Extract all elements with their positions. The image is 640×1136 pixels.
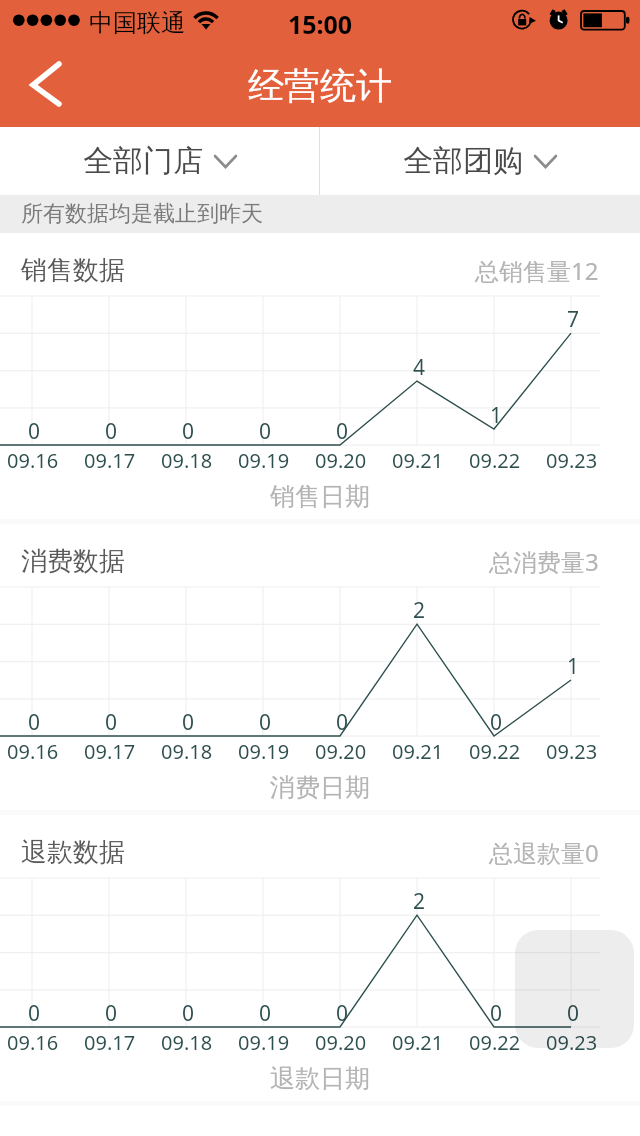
staticText: 消费日期 [0,772,640,803]
staticText: 09.19 [238,447,290,471]
staticText: 09.16 [7,447,59,471]
staticText: 总退款量0 [489,836,599,869]
staticText: 4 [413,353,426,375]
button[interactable]: AssistiveTouch [515,930,634,1048]
staticText: 全部团购 [403,142,523,180]
staticText: 2 [413,887,426,909]
staticText: 0 [336,999,349,1021]
staticText: 0 [259,999,272,1021]
staticText: 09.21 [392,447,444,471]
staticText: 总销售量12 [475,254,599,287]
staticText: 全部门店 [83,142,203,180]
staticText: 09.19 [238,1029,290,1053]
staticText: 09.16 [7,1029,59,1053]
staticText: 销售数据 [21,254,125,287]
staticText: 09.18 [161,738,213,762]
staticText: 0 [28,708,41,730]
staticText: 09.23 [546,447,598,471]
staticText: 09.17 [84,1029,136,1053]
button[interactable]: Back [0,44,85,127]
staticText: 09.23 [546,738,598,762]
staticText: 09.18 [161,447,213,471]
staticText: 0 [490,999,503,1021]
staticText: 0 [28,999,41,1021]
staticText: 消费数据 [21,545,125,578]
staticText: 09.19 [238,738,290,762]
staticText: 09.21 [392,1029,444,1053]
staticText: 0 [259,708,272,730]
staticText: 0 [28,417,41,439]
staticText: 09.17 [84,447,136,471]
staticText: 09.16 [7,738,59,762]
staticText: 0 [259,417,272,439]
staticText: 09.22 [469,1029,521,1053]
staticText: 09.20 [315,447,367,471]
staticText: 09.23 [546,1029,598,1053]
staticText: 所有数据均是截止到昨天 [21,200,263,228]
staticText: 销售日期 [0,481,640,512]
staticText: 7 [567,305,580,327]
staticText: 0 [105,708,118,730]
staticText: 0 [105,417,118,439]
staticText: 09.22 [469,447,521,471]
staticText: 0 [567,999,580,1021]
staticText: 0 [336,417,349,439]
staticText: 2 [413,596,426,618]
staticText: 退款日期 [0,1063,640,1094]
staticText: 中国联通 [89,8,185,38]
staticText: 1 [567,652,580,674]
staticText: 0 [182,708,195,730]
staticText: 1 [490,401,503,423]
staticText: 0 [182,999,195,1021]
staticText: 15:00 [0,7,640,41]
staticText: 0 [105,999,118,1021]
staticText: 0 [336,708,349,730]
staticText: 09.20 [315,1029,367,1053]
button[interactable]: 全部团购 [320,127,640,195]
staticText: 09.21 [392,738,444,762]
staticText: 09.18 [161,1029,213,1053]
staticText: 0 [182,417,195,439]
staticText: 0 [490,708,503,730]
staticText: 经营统计 [248,63,392,108]
staticText: 09.20 [315,738,367,762]
staticText: 退款数据 [21,836,125,869]
staticText: 09.17 [84,738,136,762]
button[interactable]: 全部门店 [0,127,319,195]
staticText: 09.22 [469,738,521,762]
staticText: 总消费量3 [489,545,599,578]
